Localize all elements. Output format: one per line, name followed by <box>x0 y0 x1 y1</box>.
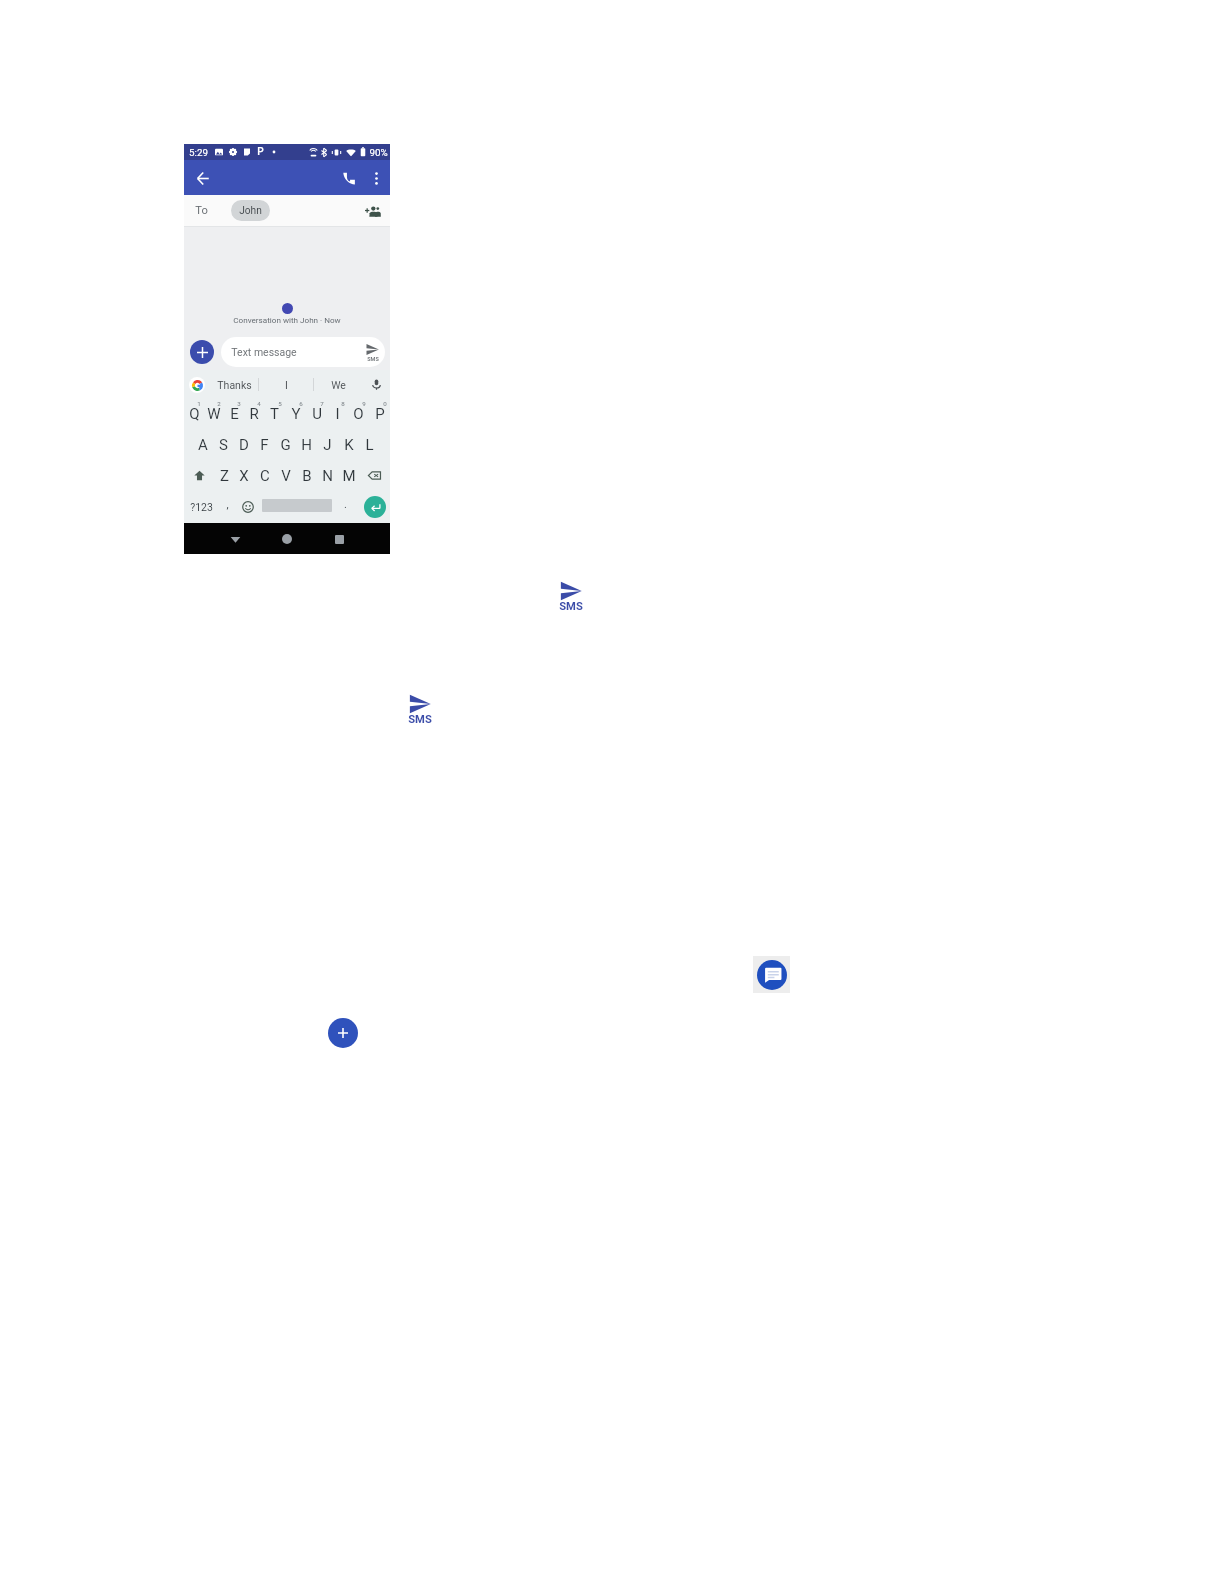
button[interactable]: F <box>254 429 275 460</box>
button[interactable]: Text message <box>221 337 385 367</box>
staticText: D <box>239 436 249 454</box>
staticText: E <box>230 405 239 423</box>
button[interactable]: 4 <box>244 399 264 429</box>
button[interactable]: John <box>231 200 270 221</box>
button[interactable]: Emoji <box>237 491 258 523</box>
staticText: 1 <box>197 400 201 407</box>
staticText: Y <box>291 405 301 423</box>
button[interactable]: 2 <box>204 399 224 429</box>
button[interactable]: Add people <box>363 201 383 221</box>
staticText: N <box>322 467 333 485</box>
button[interactable]: H <box>296 429 317 460</box>
staticText: Thanks <box>217 379 252 391</box>
staticText: . <box>344 498 347 511</box>
button[interactable]: 0 <box>369 399 390 429</box>
button[interactable]: Call <box>337 167 359 189</box>
button[interactable]: J <box>317 429 338 460</box>
staticText: 8 <box>341 400 345 407</box>
staticText: J <box>323 436 332 454</box>
button[interactable]: Messages app <box>753 956 790 993</box>
staticText: Conversation with John · Now <box>233 315 341 324</box>
staticText: P <box>375 405 385 423</box>
staticText: Z <box>220 467 229 485</box>
staticText: 4 <box>257 400 261 407</box>
button[interactable]: Back <box>192 167 214 189</box>
staticText: To <box>195 204 208 217</box>
staticText: U <box>312 405 322 423</box>
staticText: 0 <box>383 400 387 407</box>
button[interactable]: 1 <box>184 399 204 429</box>
button[interactable]: A <box>193 429 213 460</box>
staticText: G <box>280 436 291 454</box>
button[interactable]: 7 <box>306 399 327 429</box>
button[interactable]: 9 <box>348 399 369 429</box>
staticText: , <box>226 498 229 511</box>
button[interactable]: 8 <box>327 399 348 429</box>
staticText: SMS <box>559 600 583 613</box>
button[interactable]: . <box>336 491 355 523</box>
staticText: I <box>335 405 340 423</box>
button[interactable]: S <box>213 429 233 460</box>
button[interactable]: G <box>275 429 296 460</box>
staticText: John <box>239 205 262 217</box>
button[interactable]: 6 <box>285 399 306 429</box>
staticText: ?123 <box>190 501 213 513</box>
staticText: 6 <box>299 400 303 407</box>
staticText: 9 <box>362 400 366 407</box>
button[interactable]: C <box>254 460 275 491</box>
staticText: SMS <box>408 713 432 726</box>
staticText: 3 <box>237 400 241 407</box>
button[interactable]: Recents <box>328 528 350 550</box>
button[interactable]: Z <box>214 460 234 491</box>
staticText: L <box>365 436 374 454</box>
staticText: H <box>301 436 312 454</box>
button[interactable]: N <box>317 460 338 491</box>
button[interactable]: Voice input <box>368 376 385 393</box>
button[interactable]: Back <box>224 528 246 550</box>
button[interactable]: D <box>233 429 254 460</box>
staticText: I <box>285 379 288 391</box>
staticText: P <box>257 146 264 158</box>
button[interactable]: V <box>275 460 296 491</box>
staticText: Text message <box>231 346 297 358</box>
button[interactable]: X <box>234 460 254 491</box>
button[interactable]: 3 <box>224 399 244 429</box>
button[interactable]: , <box>218 491 237 523</box>
button[interactable]: M <box>338 460 359 491</box>
button[interactable]: 5 <box>264 399 285 429</box>
staticText: Q <box>189 405 200 423</box>
button[interactable]: Send SMS <box>559 580 583 615</box>
staticText: B <box>302 467 312 485</box>
staticText: 5:29 <box>189 147 208 158</box>
button[interactable]: Send SMS <box>408 693 432 728</box>
staticText: SMS <box>367 356 379 362</box>
button[interactable]: ?123 <box>184 491 218 523</box>
button[interactable]: Shift <box>184 460 214 491</box>
staticText: X <box>239 467 249 485</box>
button[interactable]: Add <box>328 1018 358 1048</box>
staticText: We <box>331 379 346 391</box>
staticText: O <box>353 405 364 423</box>
button[interactable]: K <box>338 429 359 460</box>
button[interactable]: Add attachment <box>190 340 214 364</box>
staticText: K <box>344 436 354 454</box>
staticText: T <box>270 405 279 423</box>
staticText: 2 <box>217 400 221 407</box>
staticText: F <box>260 436 269 454</box>
button[interactable]: Backspace <box>359 460 390 491</box>
button[interactable]: L <box>359 429 380 460</box>
button[interactable] <box>258 491 336 523</box>
staticText: V <box>281 467 291 485</box>
staticText: W <box>207 405 221 423</box>
button[interactable]: More options <box>365 167 387 189</box>
button[interactable]: Home <box>276 528 298 550</box>
staticText: C <box>260 467 270 485</box>
staticText: M <box>342 467 356 485</box>
button[interactable]: B <box>296 460 317 491</box>
staticText: R <box>249 405 259 423</box>
staticText: 7 <box>320 400 324 407</box>
button[interactable]: Enter <box>355 491 390 523</box>
staticText: 90% <box>369 147 388 158</box>
staticText: S <box>219 436 228 454</box>
staticText: 5 <box>278 400 282 407</box>
